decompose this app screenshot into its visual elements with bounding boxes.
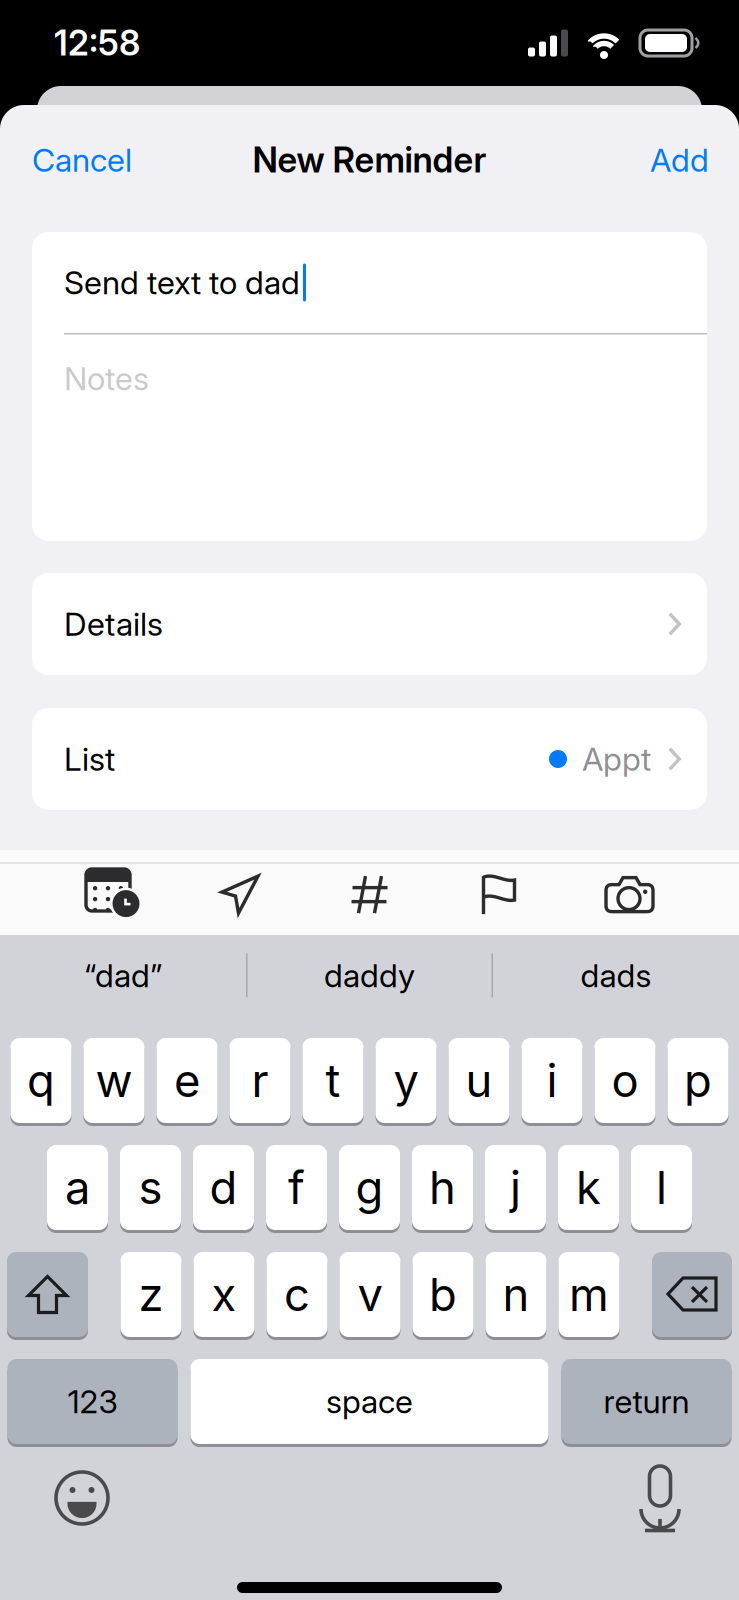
- staticText: p: [684, 1053, 712, 1108]
- staticText: c: [284, 1267, 310, 1322]
- staticText: s: [138, 1160, 162, 1215]
- button[interactable]: c: [266, 1252, 327, 1337]
- button[interactable]: b: [412, 1252, 473, 1337]
- staticText: b: [429, 1267, 457, 1322]
- staticText: o: [611, 1053, 638, 1108]
- button[interactable]: [7, 1252, 88, 1337]
- button[interactable]: d: [193, 1145, 254, 1230]
- button[interactable]: Cancel: [32, 131, 132, 189]
- button[interactable]: k: [558, 1145, 619, 1230]
- staticText: j: [510, 1160, 521, 1215]
- staticText: 123: [67, 1382, 117, 1421]
- button[interactable]: Dictation: [639, 1463, 681, 1533]
- button[interactable]: f: [266, 1145, 327, 1230]
- staticText: n: [502, 1267, 529, 1322]
- button[interactable]: x: [193, 1252, 254, 1337]
- staticText: Notes: [64, 359, 149, 398]
- button[interactable]: s: [120, 1145, 181, 1230]
- button[interactable]: Details: [32, 573, 707, 675]
- staticText: d: [209, 1160, 237, 1215]
- button[interactable]: Tag: [308, 864, 432, 926]
- staticText: 12:58: [54, 22, 140, 64]
- staticText: space: [326, 1382, 413, 1421]
- button[interactable]: space: [190, 1359, 548, 1444]
- staticText: v: [357, 1267, 382, 1322]
- staticText: x: [211, 1267, 236, 1322]
- staticText: m: [569, 1267, 609, 1322]
- staticText: q: [27, 1053, 55, 1108]
- button[interactable]: u: [448, 1038, 509, 1123]
- button[interactable]: z: [120, 1252, 181, 1337]
- button[interactable]: y: [375, 1038, 436, 1123]
- button[interactable]: r: [229, 1038, 290, 1123]
- staticText: h: [429, 1160, 456, 1215]
- button[interactable]: n: [485, 1252, 546, 1337]
- staticText: return: [603, 1382, 689, 1421]
- button[interactable]: l: [631, 1145, 692, 1230]
- button[interactable]: Attach photo: [566, 864, 693, 926]
- staticText: Details: [64, 605, 163, 643]
- staticText: e: [174, 1053, 200, 1108]
- button[interactable]: Emoji: [54, 1470, 110, 1526]
- button[interactable]: Add: [650, 131, 709, 189]
- button[interactable]: e: [156, 1038, 217, 1123]
- staticText: t: [325, 1053, 340, 1108]
- staticText: New Reminder: [252, 139, 486, 181]
- button[interactable]: Flag: [432, 864, 566, 926]
- staticText: l: [656, 1160, 667, 1215]
- staticText: “dad”: [84, 956, 162, 995]
- button[interactable]: daddy: [247, 935, 491, 1016]
- staticText: daddy: [324, 956, 415, 995]
- button[interactable]: h: [412, 1145, 473, 1230]
- button[interactable]: q: [10, 1038, 71, 1123]
- button[interactable]: [652, 1252, 732, 1337]
- button[interactable]: Location: [172, 864, 308, 926]
- staticText: dads: [580, 956, 651, 995]
- button[interactable]: j: [485, 1145, 546, 1230]
- staticText: u: [465, 1053, 492, 1108]
- staticText: r: [251, 1053, 268, 1108]
- button[interactable]: g: [339, 1145, 400, 1230]
- button[interactable]: o: [594, 1038, 655, 1123]
- staticText: a: [65, 1160, 90, 1215]
- staticText: Appt: [582, 740, 651, 778]
- staticText: z: [138, 1267, 163, 1322]
- button[interactable]: List: [32, 708, 707, 810]
- button[interactable]: dads: [493, 935, 739, 1016]
- staticText: y: [393, 1053, 418, 1108]
- button[interactable]: “dad”: [0, 935, 246, 1016]
- button[interactable]: a: [47, 1145, 108, 1230]
- staticText: i: [546, 1053, 557, 1108]
- staticText: Cancel: [32, 141, 132, 179]
- button[interactable]: 123: [7, 1359, 177, 1444]
- button[interactable]: Date: [56, 864, 172, 926]
- staticText: w: [95, 1053, 132, 1108]
- staticText: k: [576, 1160, 601, 1215]
- staticText: List: [64, 740, 115, 778]
- staticText: f: [288, 1160, 305, 1215]
- button[interactable]: p: [667, 1038, 728, 1123]
- button[interactable]: return: [561, 1359, 731, 1444]
- staticText: Send text to dad: [64, 263, 300, 302]
- button[interactable]: v: [339, 1252, 400, 1337]
- button[interactable]: t: [302, 1038, 363, 1123]
- button[interactable]: i: [521, 1038, 582, 1123]
- button[interactable]: w: [83, 1038, 144, 1123]
- staticText: g: [355, 1160, 383, 1215]
- staticText: Add: [650, 141, 709, 179]
- button[interactable]: m: [558, 1252, 619, 1337]
